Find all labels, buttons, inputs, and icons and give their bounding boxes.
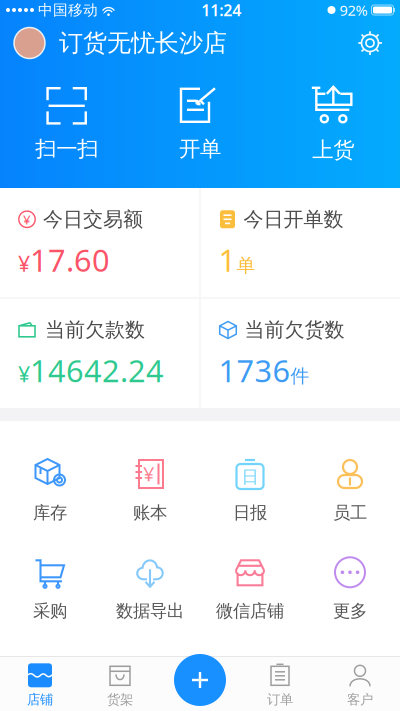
button[interactable]: 日 bbox=[200, 449, 300, 531]
staticText: 日 bbox=[241, 466, 258, 488]
staticText: 开单 bbox=[179, 136, 221, 162]
staticText: ¥ bbox=[18, 249, 30, 278]
staticText: 1736 bbox=[218, 350, 290, 391]
button[interactable]: 开单 bbox=[133, 87, 267, 162]
staticText: 11:24 bbox=[201, 0, 241, 21]
staticText: 日报 bbox=[233, 502, 267, 523]
staticText: 订货无忧长沙店 bbox=[45, 28, 227, 58]
button[interactable]: 订单 bbox=[240, 654, 320, 711]
button[interactable]: 采购 bbox=[0, 547, 100, 630]
staticText: 账本 bbox=[133, 502, 167, 523]
staticText: 货架 bbox=[107, 691, 133, 708]
button[interactable]: 上货 bbox=[267, 86, 400, 163]
button[interactable]: 更多 bbox=[300, 547, 400, 630]
staticText: 客户 bbox=[347, 691, 373, 708]
staticText: ¥ bbox=[23, 210, 31, 228]
staticText: 采购 bbox=[33, 600, 67, 622]
staticText: 件 bbox=[290, 365, 309, 387]
button[interactable]: 客户 bbox=[320, 654, 400, 711]
staticText: 14642.24 bbox=[30, 350, 164, 391]
staticText: ¥ bbox=[143, 460, 154, 487]
staticText: 员工 bbox=[333, 502, 367, 523]
staticText: 单 bbox=[236, 254, 255, 277]
button[interactable]: 货架 bbox=[80, 654, 160, 711]
button[interactable]: 微信店铺 bbox=[200, 547, 300, 630]
button[interactable]: 员工 bbox=[300, 449, 400, 531]
staticText: 当前欠货数 bbox=[244, 317, 344, 342]
button[interactable]: ¥ bbox=[0, 188, 199, 297]
staticText: 订单 bbox=[267, 691, 293, 708]
button[interactable]: 今日开单数 bbox=[200, 188, 400, 297]
staticText: 数据导出 bbox=[116, 600, 184, 622]
staticText: 今日开单数 bbox=[243, 207, 343, 232]
staticText: 库存 bbox=[33, 502, 67, 523]
staticText: 微信店铺 bbox=[216, 600, 284, 622]
button[interactable]: 新建 bbox=[172, 652, 228, 708]
staticText: 1 bbox=[218, 240, 236, 280]
staticText: 扫一扫 bbox=[35, 136, 98, 162]
staticText: 今日交易额 bbox=[43, 207, 143, 232]
button[interactable]: 数据导出 bbox=[100, 547, 200, 630]
button[interactable]: 当前欠款数 bbox=[0, 298, 199, 408]
staticText: 上货 bbox=[312, 137, 354, 163]
staticText: 更多 bbox=[333, 600, 367, 622]
button[interactable]: 设置 bbox=[352, 25, 388, 61]
button[interactable]: 当前欠货数 bbox=[200, 298, 400, 408]
staticText: 中国移动 bbox=[34, 1, 102, 19]
staticText: 店铺 bbox=[27, 691, 53, 708]
button[interactable]: 扫一扫 bbox=[0, 87, 133, 162]
staticText: ¥ bbox=[18, 360, 30, 388]
staticText: 当前欠款数 bbox=[45, 317, 145, 342]
staticText: 92% bbox=[335, 0, 367, 20]
button[interactable]: 店铺 bbox=[0, 654, 80, 711]
staticText: 17.60 bbox=[30, 240, 110, 280]
button[interactable]: 库存 bbox=[0, 449, 100, 531]
button[interactable]: ¥ bbox=[100, 449, 200, 531]
